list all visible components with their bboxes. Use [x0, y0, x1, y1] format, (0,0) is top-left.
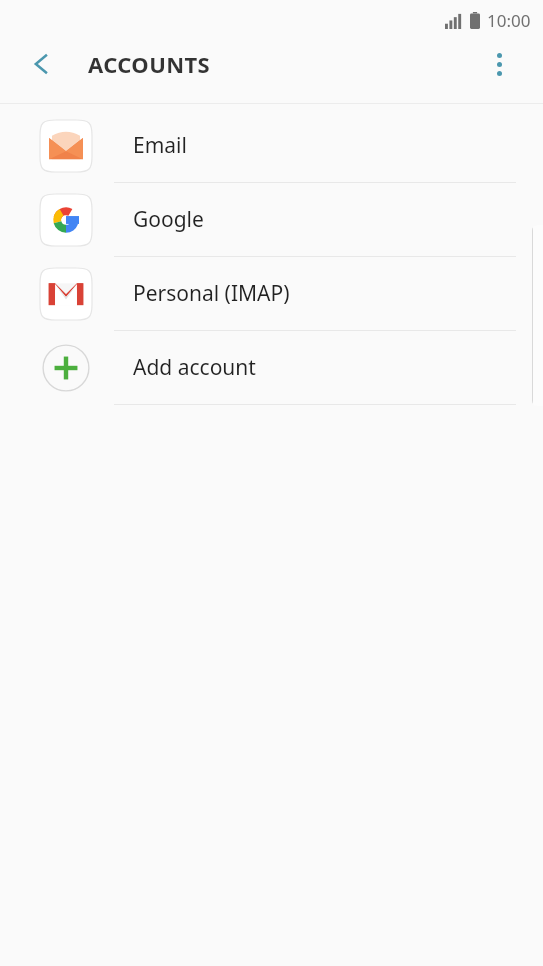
staticText: Add account: [133, 353, 256, 382]
button[interactable]: Email: [0, 109, 543, 182]
staticText: ACCOUNTS: [88, 49, 211, 79]
staticText: 10:00: [487, 9, 531, 32]
button[interactable]: Google: [0, 183, 543, 256]
button[interactable]: Add account: [0, 331, 543, 404]
staticText: Personal (IMAP): [133, 279, 290, 308]
button[interactable]: Personal (IMAP): [0, 257, 543, 330]
button[interactable]: More options: [477, 42, 521, 86]
staticText: Email: [133, 131, 187, 160]
button[interactable]: Navigate up: [18, 40, 66, 88]
staticText: Google: [133, 205, 204, 234]
